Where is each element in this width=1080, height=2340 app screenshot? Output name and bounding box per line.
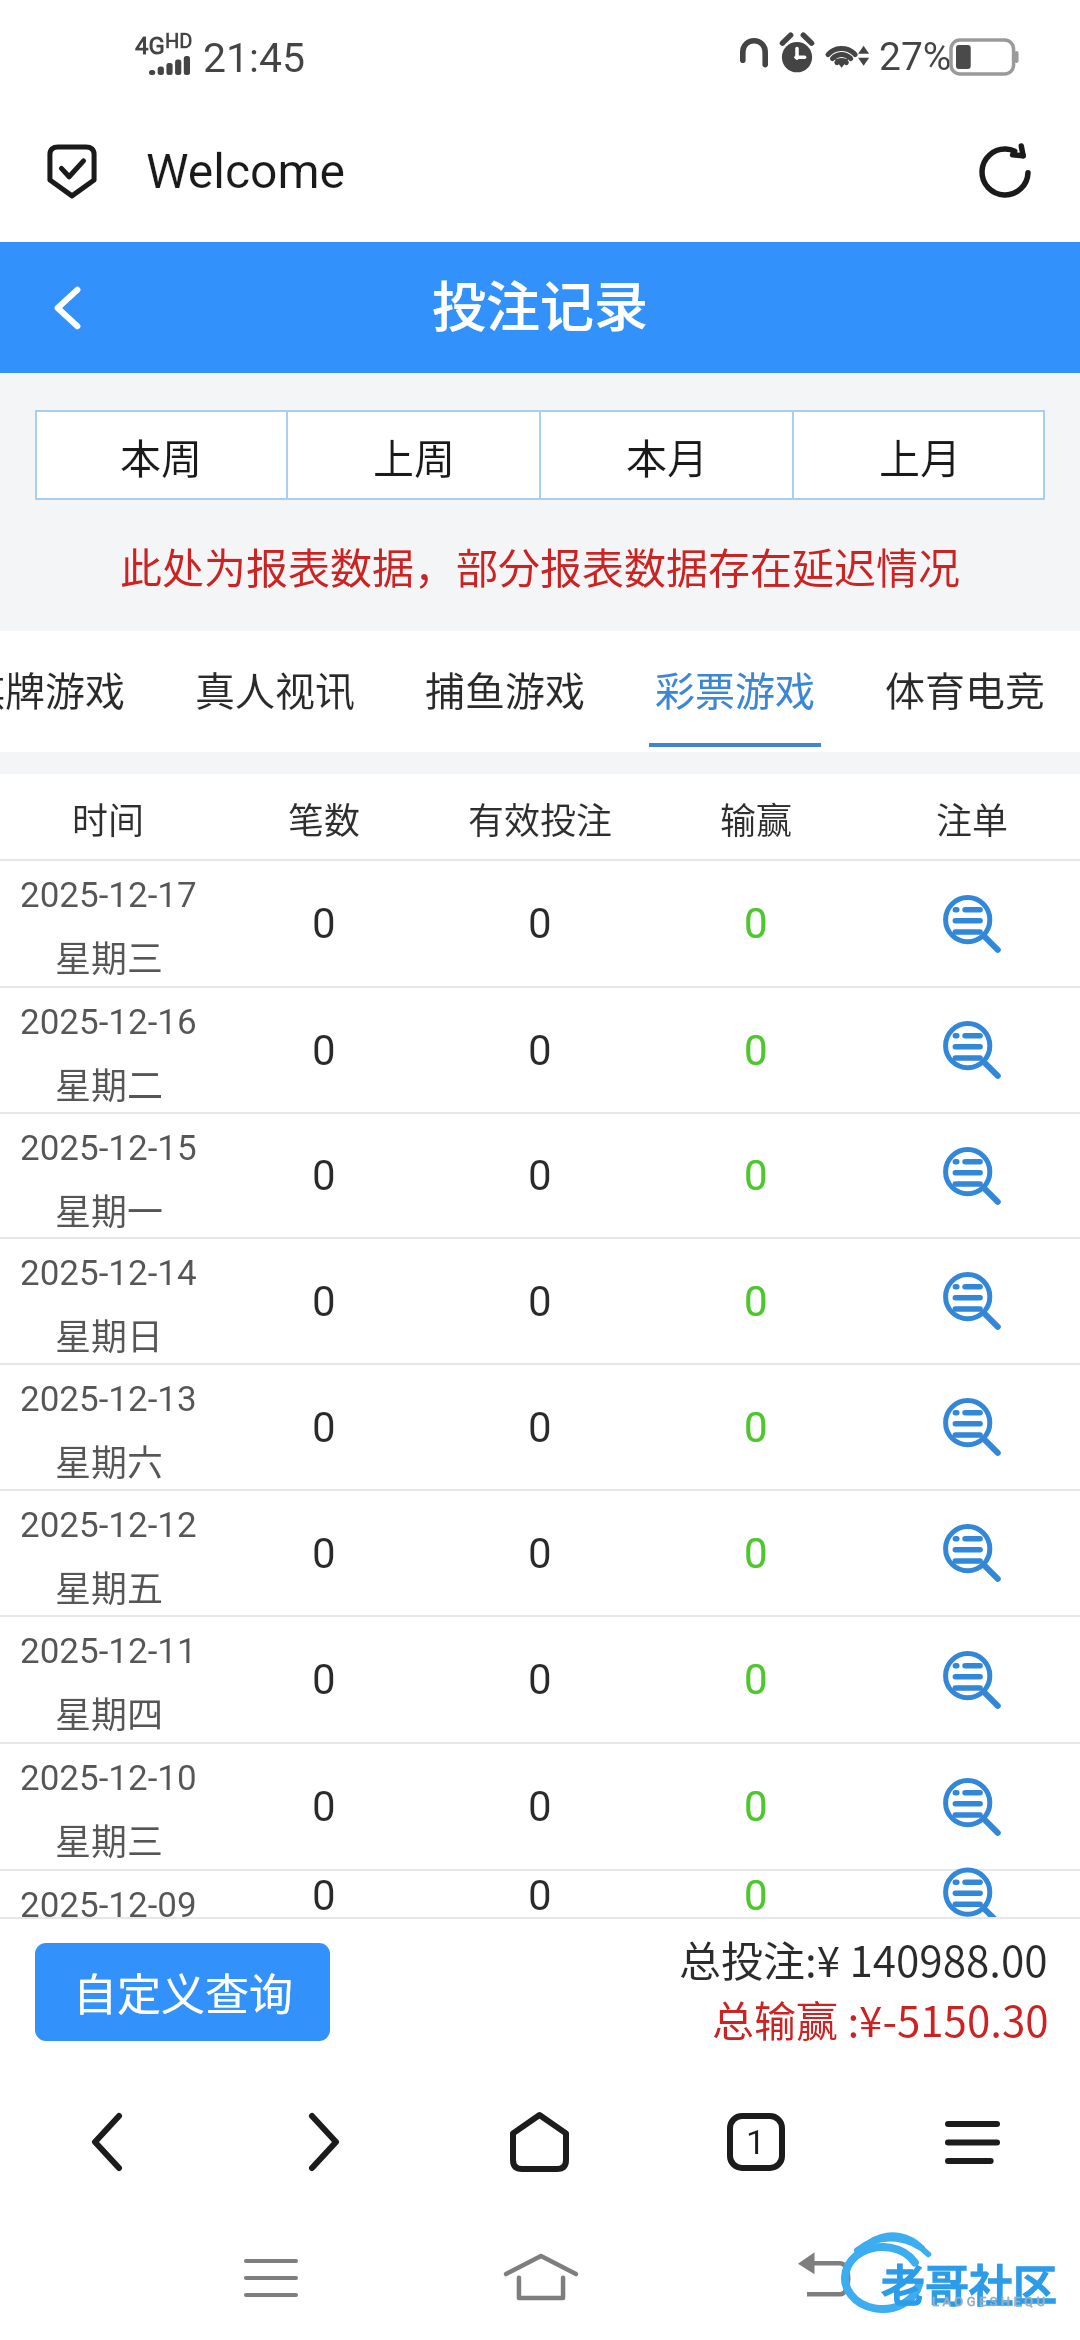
button[interactable]: View bets (864, 988, 1080, 1112)
staticText: 输赢 (720, 792, 793, 844)
staticText: 0 (528, 1782, 552, 1831)
staticText: 0 (744, 1277, 768, 1326)
staticText: 0 (744, 1529, 768, 1578)
button[interactable]: 2025-12-12 (0, 1491, 1080, 1615)
staticText: Welcome (146, 143, 346, 199)
button[interactable]: 体育电竞 (860, 631, 1070, 752)
staticText: 0 (312, 1871, 336, 1919)
button[interactable]: Back (768, 2237, 878, 2313)
button[interactable]: Tabs (701, 2080, 811, 2204)
staticText: 注单 (936, 792, 1009, 844)
staticText: 本月 (626, 426, 708, 485)
staticText: 0 (312, 1782, 336, 1831)
staticText: 0 (528, 1529, 552, 1578)
staticText: LAOGESHEQU (932, 2294, 1049, 2309)
staticText: 2025-12-10 (20, 1758, 197, 1799)
staticText: 0 (312, 1277, 336, 1326)
staticText: 体育电竞 (885, 660, 1045, 718)
button[interactable]: 捕鱼游戏 (400, 631, 610, 752)
button[interactable]: Back (52, 2080, 162, 2204)
staticText: 0 (528, 1277, 552, 1326)
button[interactable]: Back (22, 263, 112, 353)
staticText: 星期六 (55, 1434, 164, 1486)
button[interactable]: 真人视讯 (170, 631, 380, 752)
button[interactable]: Recents (216, 2240, 326, 2316)
staticText: 星期日 (55, 1308, 164, 1360)
button[interactable]: 彩票游戏 (630, 631, 840, 752)
button[interactable]: View bets (864, 1871, 1080, 1919)
staticText: 自定义查询 (73, 1960, 293, 2024)
button[interactable]: View bets (864, 1617, 1080, 1742)
button[interactable]: Home (484, 2080, 594, 2204)
staticText: 2025-12-14 (20, 1253, 197, 1294)
staticText: 笔数 (288, 792, 361, 844)
staticText: 有效投注 (468, 792, 613, 844)
staticText: 0 (312, 1403, 336, 1452)
staticText: 星期三 (55, 1813, 164, 1865)
staticText: 0 (744, 1871, 768, 1919)
button[interactable]: 棋牌游戏 (0, 631, 150, 752)
staticText: 投注记录 (432, 264, 648, 342)
button[interactable]: 2025-12-13 (0, 1365, 1080, 1489)
staticText: 总投注:¥ 140988.00 (679, 1928, 1048, 1989)
staticText: 星期二 (55, 1057, 164, 1109)
staticText: 27% (879, 34, 952, 80)
button[interactable]: 自定义查询 (35, 1943, 330, 2041)
staticText: 1 (746, 2122, 766, 2162)
staticText: 0 (528, 1403, 552, 1452)
button[interactable]: View bets (864, 1239, 1080, 1363)
staticText: 老哥社区 (881, 2251, 1057, 2315)
button[interactable]: 2025-12-10 (0, 1744, 1080, 1869)
staticText: 0 (312, 1655, 336, 1704)
staticText: 2025-12-12 (20, 1505, 197, 1546)
staticText: 0 (312, 1026, 336, 1075)
staticText: 真人视讯 (195, 660, 355, 718)
button[interactable]: 2025-12-15 (0, 1114, 1080, 1237)
button[interactable]: View bets (864, 1744, 1080, 1869)
button[interactable]: Menu (917, 2080, 1027, 2204)
button[interactable]: Forward (269, 2080, 379, 2204)
button[interactable]: Home (486, 2239, 596, 2315)
staticText: 彩票游戏 (655, 660, 815, 718)
staticText: 0 (528, 1655, 552, 1704)
staticText: 21:45 (203, 34, 306, 82)
button[interactable]: 本月 (541, 410, 792, 500)
button[interactable]: View bets (864, 1491, 1080, 1615)
button[interactable]: 2025-12-17 (0, 861, 1080, 986)
staticText: 时间 (72, 792, 145, 844)
button[interactable]: Refresh (960, 136, 1050, 226)
staticText: 上月 (879, 426, 961, 485)
staticText: 2025-12-16 (20, 1002, 197, 1043)
button[interactable]: 2025-12-14 (0, 1239, 1080, 1363)
staticText: 0 (744, 1403, 768, 1452)
button[interactable]: View bets (864, 1365, 1080, 1489)
staticText: 0 (744, 1151, 768, 1200)
staticText: 0 (744, 1782, 768, 1831)
staticText: 星期五 (55, 1560, 164, 1612)
staticText: 星期一 (55, 1183, 164, 1235)
staticText: 此处为报表数据，部分报表数据存在延迟情况 (120, 535, 961, 596)
button[interactable]: View bets (864, 861, 1080, 986)
button[interactable]: 2025-12-09 (0, 1871, 1080, 1919)
staticText: 0 (744, 1655, 768, 1704)
staticText: 0 (312, 899, 336, 948)
staticText: 上周 (373, 426, 455, 485)
staticText: 4G (135, 32, 165, 60)
button[interactable]: 上月 (794, 410, 1045, 500)
staticText: 总输赢 :¥-5150.30 (712, 1988, 1049, 2049)
button[interactable]: 2025-12-11 (0, 1617, 1080, 1742)
button[interactable]: View bets (864, 1114, 1080, 1237)
staticText: 0 (528, 1026, 552, 1075)
button[interactable]: 上周 (288, 410, 539, 500)
staticText: 星期三 (55, 930, 164, 982)
staticText: 捕鱼游戏 (425, 660, 585, 718)
staticText: 2025-12-11 (20, 1631, 197, 1672)
button[interactable]: 2025-12-16 (0, 988, 1080, 1112)
staticText: 0 (528, 1151, 552, 1200)
staticText: 本周 (120, 426, 202, 485)
staticText: 2025-12-09 (20, 1885, 197, 1919)
staticText: 0 (528, 899, 552, 948)
button[interactable]: 本周 (35, 410, 286, 500)
staticText: 0 (312, 1151, 336, 1200)
staticText: 0 (312, 1529, 336, 1578)
